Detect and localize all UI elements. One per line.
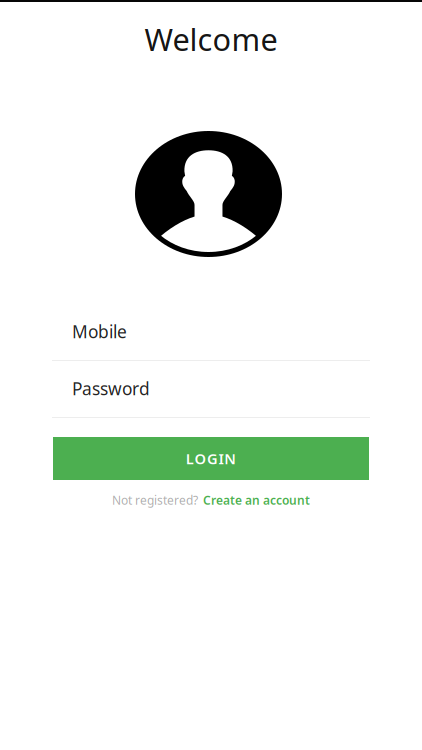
staticText: LOGIN [186, 449, 236, 468]
button[interactable]: LOGIN [53, 437, 369, 480]
staticText: Create an account [203, 492, 310, 508]
staticText: Welcome [144, 19, 277, 59]
button[interactable]: Mobile [52, 320, 370, 361]
staticText: Password [72, 377, 150, 400]
button[interactable]: Not registered? [0, 489, 422, 511]
button[interactable]: Password [52, 377, 370, 418]
staticText: Not registered? [112, 492, 198, 508]
staticText: Mobile [72, 320, 127, 343]
